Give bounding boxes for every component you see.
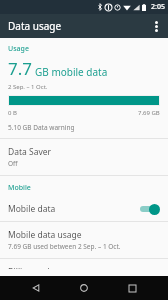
button[interactable]: Billing cycle <box>0 259 168 276</box>
staticText: Data usage <box>8 19 62 33</box>
button[interactable]: Data Saver <box>0 139 168 175</box>
staticText: 7.7 <box>8 57 33 80</box>
button[interactable]: Usage <box>0 38 168 138</box>
button[interactable]: Mobile data usage <box>0 222 168 258</box>
staticText: Off <box>8 159 18 168</box>
staticText: 7.69 GB <box>138 109 160 117</box>
button[interactable]: Home <box>72 276 96 300</box>
staticText: 2 Sep. – 1 Oct. <box>8 83 48 91</box>
button[interactable]: Mobile data <box>0 197 168 221</box>
staticText: Billing cycle <box>8 266 55 269</box>
staticText: Mobile <box>8 183 31 193</box>
staticText: Mobile data usage <box>8 229 82 241</box>
staticText: 0 B <box>8 109 17 117</box>
staticText: Data Saver <box>8 146 52 158</box>
button[interactable]: Recent apps <box>120 276 144 300</box>
staticText: 2:05 <box>151 2 165 12</box>
button[interactable]: Back <box>24 276 48 300</box>
staticText: Usage <box>8 44 29 54</box>
staticText: 7.69 GB used between 2 Sep. – 1 Oct. <box>8 242 121 251</box>
button[interactable]: More options <box>144 14 168 38</box>
staticText: GB mobile data <box>35 65 108 79</box>
staticText: Mobile data <box>8 203 138 215</box>
staticText: 5.10 GB Data warning <box>8 123 75 132</box>
